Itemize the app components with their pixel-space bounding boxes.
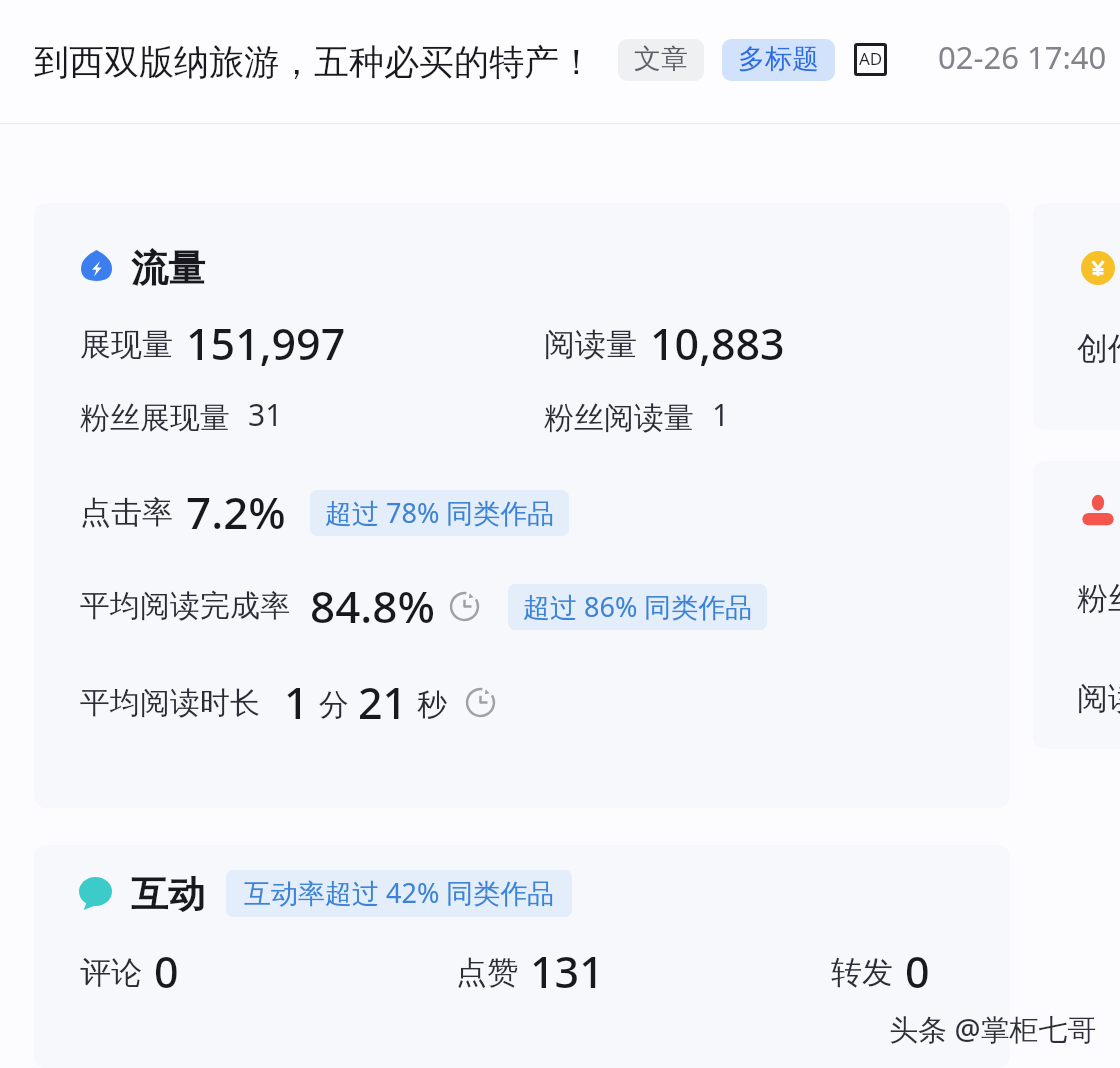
staticText: 21 — [358, 673, 408, 732]
button[interactable]: 多标题 — [722, 39, 835, 81]
button[interactable]: 创作收益 — [1033, 203, 1120, 430]
staticText: 平均阅读完成率 — [80, 587, 290, 625]
staticText: 超过 78% 同类作品 — [325, 494, 555, 531]
button[interactable]: 文章 — [618, 39, 704, 81]
button[interactable] — [34, 845, 1010, 1068]
staticText: 点击率 — [80, 493, 173, 532]
staticText: 131 — [530, 942, 604, 1001]
staticText: 展现量 — [80, 325, 173, 364]
staticText: 粉丝展现量 — [80, 399, 230, 437]
staticText: 02-26 17:40 — [938, 36, 1107, 78]
button[interactable]: 超过 86% 同类作品 — [508, 584, 767, 630]
staticText: 粉丝 — [1077, 579, 1120, 618]
staticText: 点赞 — [456, 953, 518, 992]
button[interactable] — [34, 203, 1010, 808]
staticText: 1 — [284, 673, 309, 732]
staticText: 秒 — [417, 686, 447, 724]
staticText: 互动率超过 42% 同类作品 — [244, 874, 555, 911]
staticText: 阅读 — [1077, 679, 1120, 718]
staticText: 互动 — [131, 871, 205, 918]
button[interactable]: AD label — [854, 43, 887, 76]
staticText: 转发 — [831, 953, 893, 992]
staticText: 到西双版纳旅游，五种必买的特产！ — [34, 40, 594, 84]
staticText: 创作 — [1077, 329, 1120, 368]
staticText: 超过 86% 同类作品 — [523, 588, 753, 625]
staticText: 文章 — [634, 42, 688, 76]
staticText: 平均阅读时长 — [80, 684, 260, 722]
staticText: 7.2% — [186, 482, 286, 542]
staticText: 流量 — [131, 245, 205, 292]
staticText: 31 — [248, 394, 283, 435]
staticText: 10,883 — [650, 314, 785, 373]
button[interactable]: 粉丝阅读 — [1033, 461, 1120, 749]
staticText: 84.8% — [310, 576, 435, 636]
staticText: 阅读量 — [544, 325, 637, 364]
staticText: 粉丝阅读量 — [544, 399, 694, 437]
staticText: 151,997 — [186, 314, 346, 373]
staticText: 头条 @掌柜七哥 — [889, 1009, 1097, 1049]
staticText: 0 — [905, 942, 930, 1001]
staticText: 1 — [712, 394, 730, 435]
staticText: 评论 — [80, 953, 142, 992]
staticText: AD — [859, 47, 883, 70]
staticText: 分 — [319, 686, 349, 724]
staticText: 多标题 — [738, 42, 819, 76]
button[interactable]: 超过 78% 同类作品 — [310, 490, 569, 536]
button[interactable]: 互动率超过 42% 同类作品 — [226, 870, 572, 917]
staticText: 0 — [154, 942, 179, 1001]
